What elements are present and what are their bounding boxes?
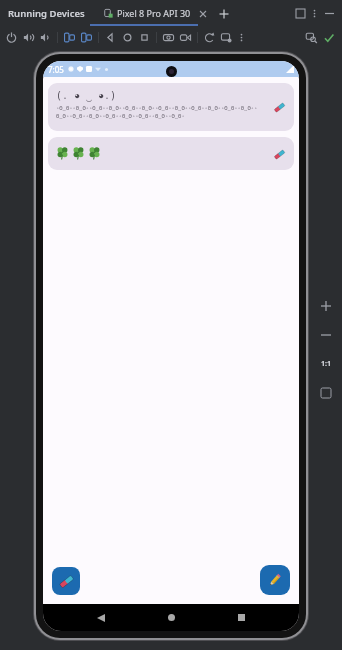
button[interactable]: Split window (292, 5, 308, 21)
button[interactable]: New tab (216, 6, 231, 21)
staticText: Pixel 8 Pro API 30 (117, 7, 191, 19)
button[interactable]: Delete note (271, 99, 287, 115)
button[interactable]: Add note (260, 565, 290, 595)
button[interactable]: Delete note (271, 146, 287, 162)
button[interactable]: More (235, 31, 248, 44)
button[interactable]: Power (3, 29, 20, 46)
button[interactable]: Volume up (20, 29, 37, 46)
button[interactable]: Record screen (177, 29, 194, 46)
button[interactable]: Recent apps (228, 604, 255, 631)
staticText: 7:05 (48, 64, 64, 75)
button[interactable]: Inspect (303, 29, 320, 46)
button[interactable]: History (201, 29, 218, 46)
button[interactable]: Rotate right (78, 29, 95, 46)
button[interactable]: Volume down (37, 29, 54, 46)
staticText: Running Devices (8, 7, 85, 20)
button[interactable]: Home (119, 29, 136, 46)
button[interactable]: Status OK (320, 29, 337, 46)
button[interactable]: (. ◕ ‿ ◕.) (48, 83, 294, 131)
staticText: (. ◕ ‿ ◕.) (56, 88, 116, 102)
button[interactable]: Delete note (48, 137, 294, 170)
button[interactable]: Actual size (318, 356, 334, 372)
button[interactable]: Pixel 8 Pro API 30 (101, 3, 210, 23)
button[interactable]: Erase all notes (52, 567, 80, 595)
staticText: ◦ʘ‿ʘ◦◦ʘ‿ʘ◦◦ʘ‿ʘ◦◦ʘ‿ʘ◦◦ʘ‿ʘ◦◦ʘ‿ʘ◦◦ʘ‿ʘ◦◦ʘ‿ʘ◦… (56, 104, 260, 120)
button[interactable]: More options (308, 7, 321, 20)
button[interactable]: Screenshot (160, 29, 177, 46)
button[interactable]: Close tab (198, 9, 207, 18)
button[interactable]: Zoom out (318, 327, 334, 343)
button[interactable]: Zoom to fit (318, 385, 334, 401)
button[interactable]: Home (158, 604, 185, 631)
button[interactable]: Device settings (218, 29, 235, 46)
staticText: 1:1 (321, 359, 331, 369)
button[interactable]: Minimize (321, 5, 337, 21)
button[interactable]: Back (87, 604, 114, 631)
button[interactable]: Overview (136, 29, 153, 46)
button[interactable]: Zoom in (318, 298, 334, 314)
button[interactable]: Rotate left (61, 29, 78, 46)
button[interactable]: Back (102, 29, 119, 46)
